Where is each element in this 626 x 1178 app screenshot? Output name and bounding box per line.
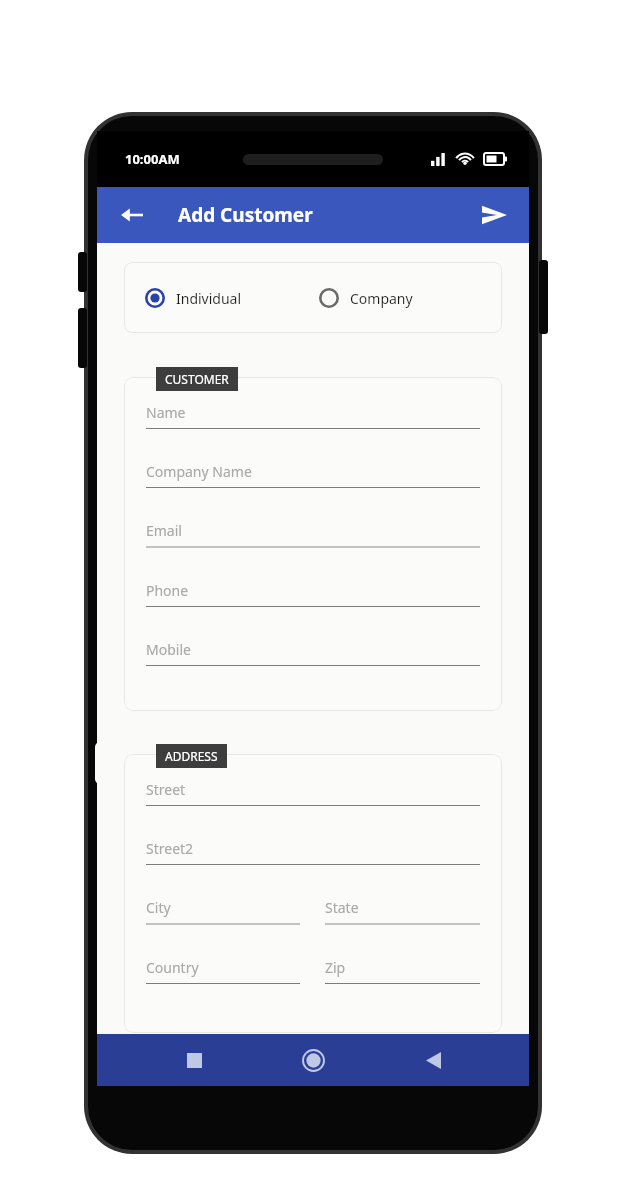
staticText: State — [325, 898, 359, 917]
button[interactable]: Back — [109, 192, 155, 238]
staticText: Street — [146, 780, 186, 799]
button[interactable]: Company — [319, 272, 469, 324]
button[interactable]: Back — [410, 1037, 456, 1083]
staticText: CUSTOMER — [165, 371, 229, 387]
staticText: Mobile — [146, 640, 191, 659]
button[interactable]: Individual — [145, 272, 319, 324]
staticText: Company Name — [146, 462, 252, 481]
button[interactable]: Send — [471, 192, 517, 238]
staticText: City — [146, 898, 171, 917]
staticText: Name — [146, 403, 186, 422]
button[interactable]: Recent apps — [171, 1037, 217, 1083]
staticText: Individual — [176, 289, 242, 308]
staticText: 10:00AM — [125, 150, 180, 168]
staticText: Add Customer — [178, 202, 313, 228]
staticText: Email — [146, 521, 182, 540]
staticText: Phone — [146, 581, 189, 600]
staticText: Zip — [325, 958, 346, 977]
button[interactable]: Home — [290, 1037, 336, 1083]
staticText: Street2 — [146, 839, 194, 858]
staticText: ADDRESS — [165, 748, 218, 764]
staticText: Country — [146, 958, 199, 977]
staticText: Company — [350, 289, 413, 308]
